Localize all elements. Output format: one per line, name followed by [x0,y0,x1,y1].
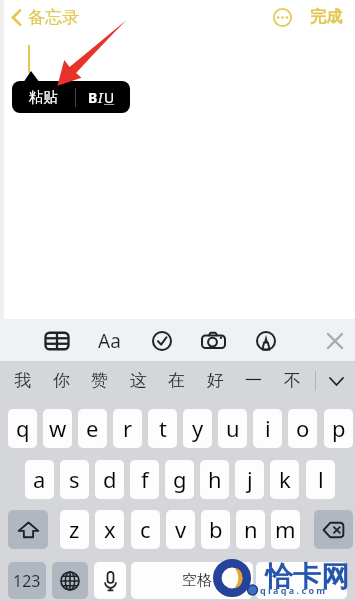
staticText: y [192,413,204,443]
staticText: w [49,413,67,443]
button[interactable]: B [76,81,130,113]
staticText: r [123,413,133,443]
button[interactable]: Checklist [143,325,180,356]
staticText: x [104,514,116,544]
staticText: z [69,514,80,544]
button[interactable]: j [235,460,264,499]
staticText: 你 [53,370,70,391]
staticText: 不 [284,370,301,391]
button[interactable]: g [165,460,194,499]
button[interactable]: b [201,510,230,549]
button[interactable]: r [113,409,142,448]
staticText: d [103,464,117,494]
button[interactable]: Table [38,325,75,356]
staticText: 这 [130,370,147,391]
staticText: 备忘录 [28,7,79,28]
button[interactable]: Return [256,562,347,599]
staticText: a [33,464,46,494]
button[interactable]: 不 [274,363,310,397]
button[interactable]: q [8,409,37,448]
button[interactable]: Delete [314,510,353,549]
button[interactable]: Camera [195,325,232,356]
button[interactable]: 这 [120,363,156,397]
button[interactable]: u [218,409,247,448]
staticText: g [173,464,187,494]
button[interactable]: 完成 [308,2,344,32]
button[interactable]: More options [269,4,295,30]
button[interactable]: Markup [247,325,284,356]
staticText: e [86,413,99,443]
button[interactable]: Shift [8,510,48,549]
button[interactable]: x [95,510,124,549]
staticText: q [16,413,30,443]
staticText: B [88,88,98,107]
button[interactable]: y [183,409,212,448]
staticText: I [98,88,103,107]
staticText: s [69,464,80,494]
button[interactable]: 粘贴 [12,81,75,113]
staticText: i [265,413,271,443]
staticText: b [209,514,223,544]
staticText: t [159,413,167,443]
button[interactable]: e [78,409,107,448]
staticText: U [104,88,115,107]
staticText: o [296,413,310,443]
staticText: 在 [168,370,185,391]
button[interactable]: Close keyboard [317,325,353,356]
staticText: 完成 [310,7,342,27]
button[interactable]: Aa [91,325,128,356]
button[interactable]: c [131,510,160,549]
button[interactable]: Switch keyboard [52,562,88,599]
staticText: 粘贴 [29,88,58,106]
button[interactable]: z [60,510,89,549]
button[interactable]: h [200,460,229,499]
button[interactable]: k [270,460,299,499]
staticText: f [141,464,149,494]
staticText: 恰卡网 [265,559,349,594]
button[interactable]: p [324,409,353,448]
button[interactable]: o [288,409,317,448]
button[interactable]: f [130,460,159,499]
staticText: v [175,514,187,544]
button[interactable]: Expand suggestions [320,364,352,398]
button[interactable]: w [43,409,72,448]
button[interactable]: d [95,460,124,499]
button[interactable]: 一 [235,363,271,397]
button[interactable]: m [271,510,300,549]
button[interactable]: 备忘录 [0,7,87,28]
staticText: 赞 [91,370,108,391]
button[interactable]: v [166,510,195,549]
staticText: n [244,514,258,544]
button[interactable]: 赞 [81,363,117,397]
staticText: u [226,413,240,443]
staticText: c [140,514,151,544]
button[interactable]: s [60,460,89,499]
button[interactable]: 好 [197,363,233,397]
staticText: 我 [14,370,31,391]
staticText: 好 [207,370,224,391]
staticText: l [318,464,324,494]
button[interactable]: 你 [43,363,79,397]
button[interactable]: a [25,460,54,499]
staticText: 一 [245,370,262,391]
staticText: p [332,413,346,443]
button[interactable]: l [306,460,335,499]
button[interactable]: 123 [8,562,46,599]
staticText: 123 [13,570,41,592]
staticText: Aa [98,328,121,354]
staticText: h [208,464,222,494]
button[interactable]: i [253,409,282,448]
button[interactable]: Dictation [94,562,126,599]
staticText: j [247,464,253,494]
staticText: m [275,514,296,544]
button[interactable]: 在 [158,363,194,397]
staticText: q i a q a . c o m [260,584,326,596]
button[interactable]: 我 [4,363,40,397]
button[interactable]: n [236,510,265,549]
button[interactable]: 空格 [131,562,253,599]
button[interactable]: t [148,409,177,448]
staticText: 空格 [182,571,212,590]
staticText: k [279,464,291,494]
